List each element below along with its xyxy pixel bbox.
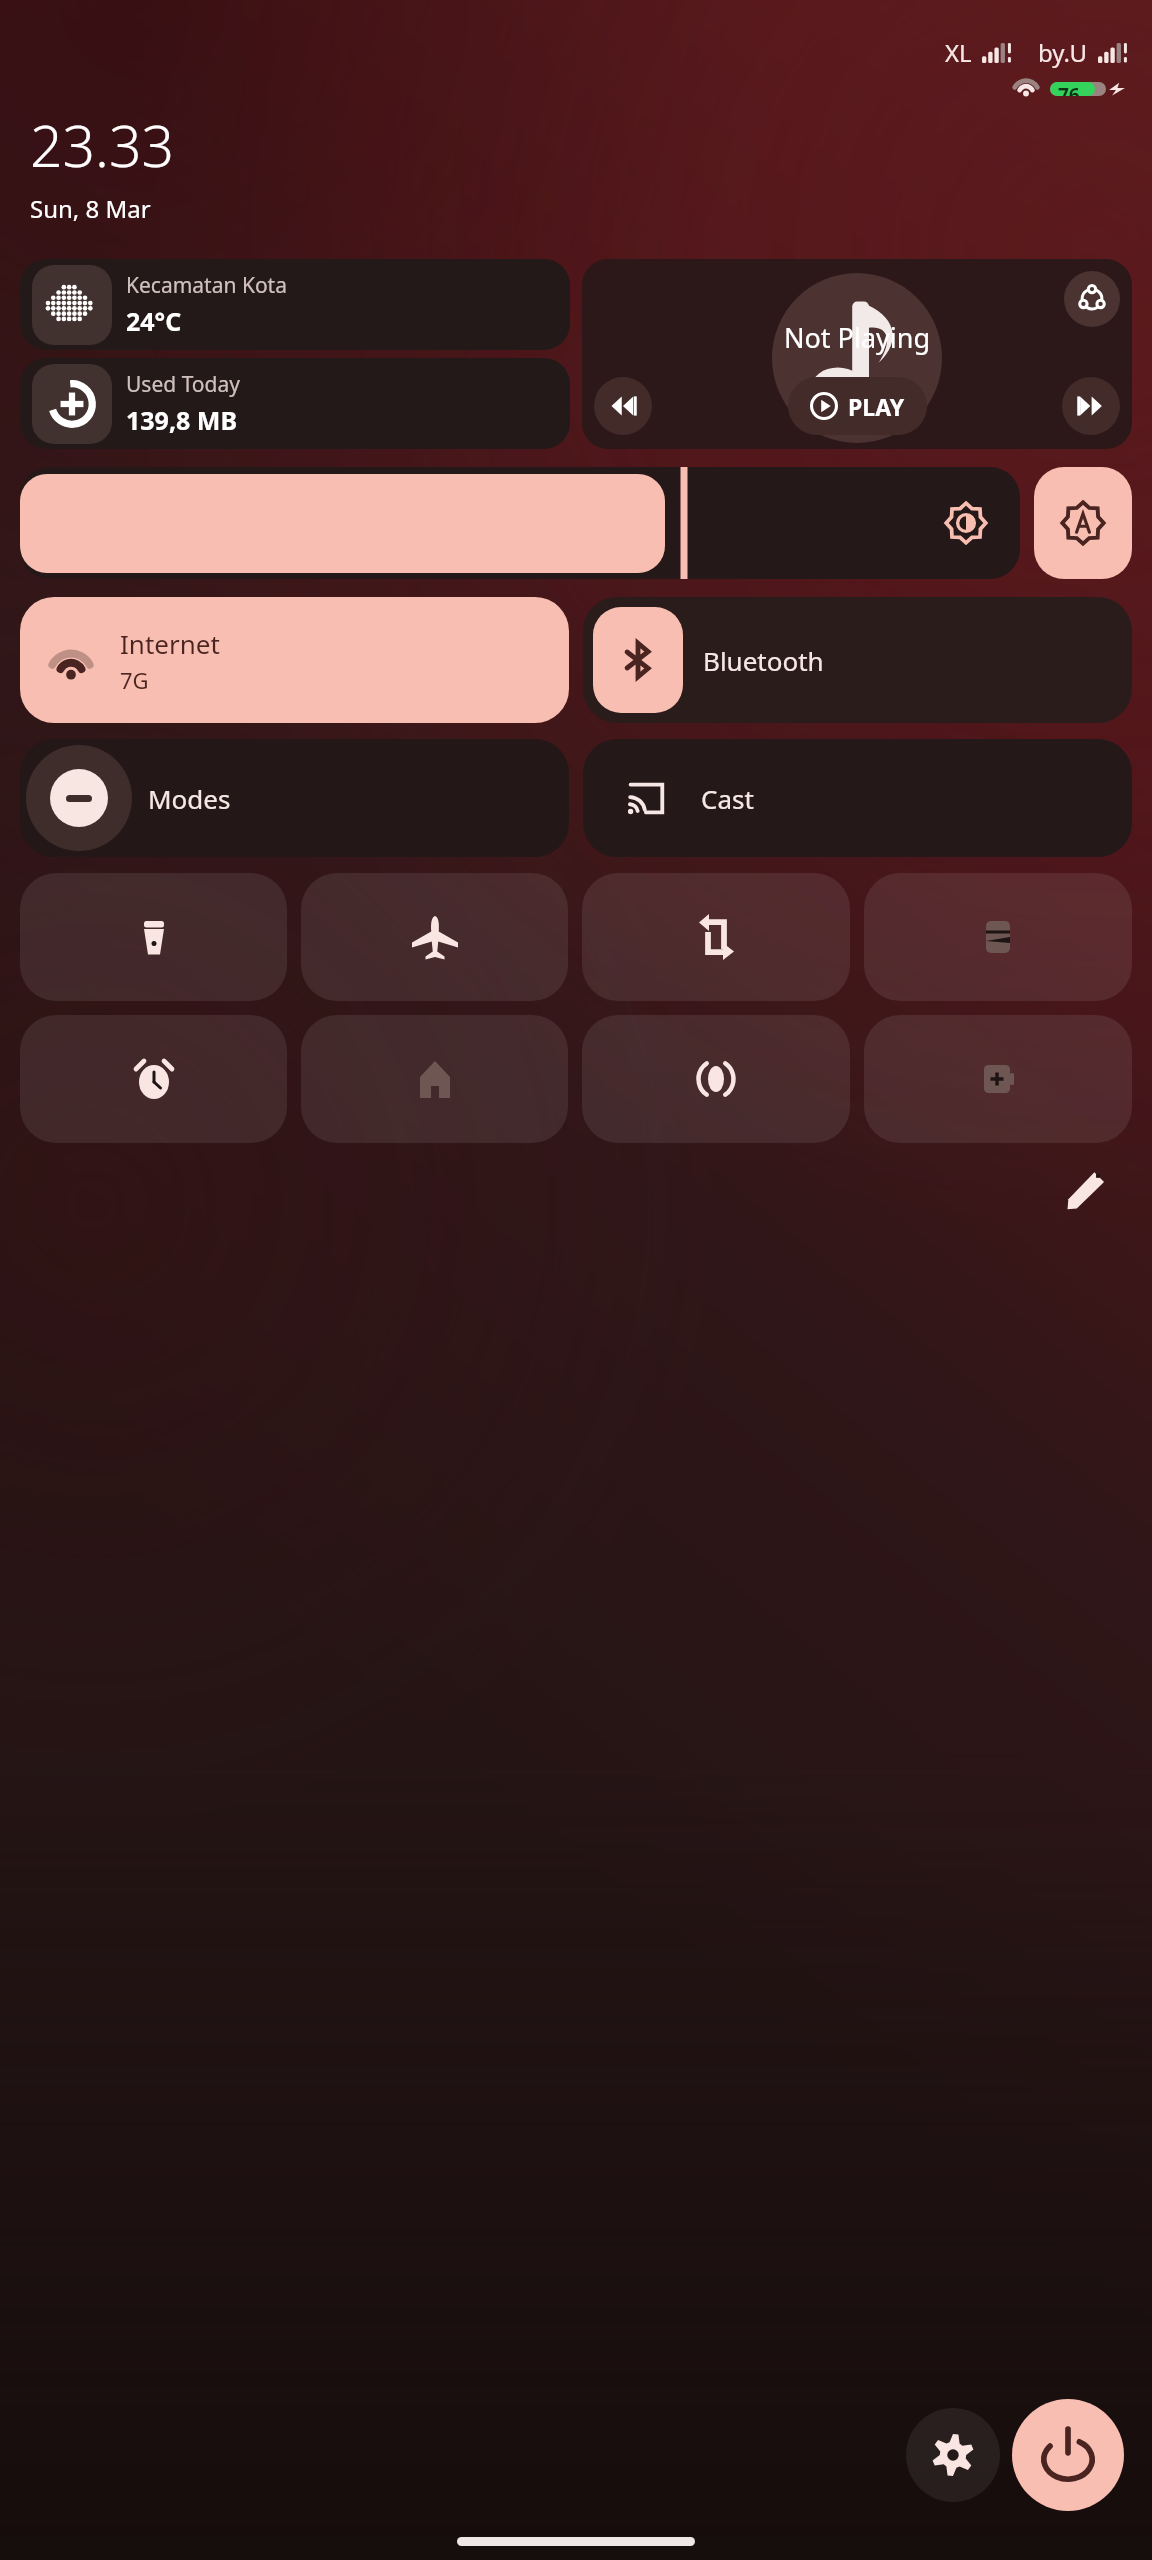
button[interactable]: Screen record	[582, 1015, 850, 1143]
staticText: Cast	[701, 781, 754, 816]
staticText: Internet	[120, 626, 220, 661]
staticText: Modes	[148, 781, 231, 816]
button[interactable]: Home	[301, 1015, 568, 1143]
button[interactable]: Internet	[20, 597, 569, 723]
button[interactable]: Output switcher	[1064, 271, 1120, 327]
staticText: by.U	[1038, 36, 1088, 69]
button[interactable]: Airplane mode	[301, 873, 568, 1001]
staticText: Bluetooth	[703, 643, 824, 678]
button[interactable]: Modes	[20, 739, 569, 857]
staticText: Used Today	[126, 370, 240, 399]
staticText: 23.33	[30, 106, 175, 184]
button[interactable]: Settings	[906, 2408, 1000, 2502]
button[interactable]: Kecamatan Kota	[20, 259, 570, 350]
button[interactable]: Alarm	[20, 1015, 287, 1143]
button[interactable]: Next	[1062, 377, 1120, 435]
button[interactable]: Used Today	[20, 358, 570, 449]
button[interactable]: Power	[1012, 2399, 1124, 2511]
staticText: 139,8 MB	[126, 403, 238, 437]
button[interactable]: Bluetooth	[583, 597, 1132, 723]
button[interactable]: Flashlight	[20, 873, 287, 1001]
staticText: XL	[945, 36, 972, 69]
button[interactable]: PLAY	[788, 377, 927, 435]
staticText: Not Playing	[784, 319, 931, 356]
button[interactable]: Edit tiles	[1056, 1160, 1116, 1220]
staticText: Kecamatan Kota	[126, 271, 287, 300]
button[interactable]: Wallet	[864, 873, 1132, 1001]
staticText: 7G	[120, 665, 149, 695]
button[interactable]: Auto rotate	[582, 873, 850, 1001]
button[interactable]: Not Playing	[582, 259, 1132, 449]
button[interactable]: Battery saver	[864, 1015, 1132, 1143]
button[interactable]: Brightness	[20, 467, 1020, 579]
button[interactable]: Cast	[583, 739, 1132, 857]
staticText: Sun, 8 Mar	[30, 192, 151, 225]
staticText: 76	[1058, 82, 1080, 96]
button[interactable]: Auto brightness	[1034, 467, 1132, 579]
staticText: PLAY	[848, 391, 905, 422]
staticText: 24°C	[126, 304, 182, 338]
button[interactable]: Previous	[594, 377, 652, 435]
staticText: Media	[826, 378, 890, 408]
